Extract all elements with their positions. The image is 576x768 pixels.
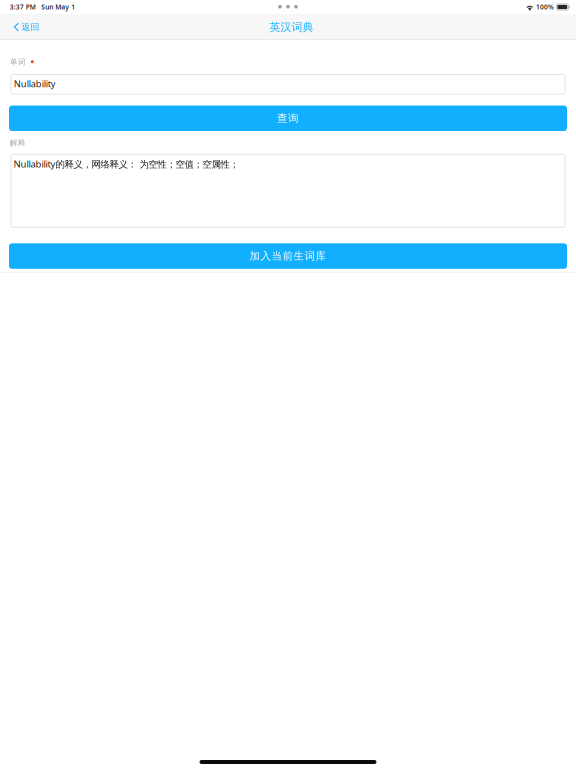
staticText: 解释 — [10, 138, 26, 148]
staticText: 单词 — [10, 57, 26, 67]
staticText: 查询 — [277, 112, 299, 125]
staticText: 英汉词典 — [269, 20, 313, 34]
button[interactable]: 返回 — [0, 16, 45, 38]
staticText: 返回 — [21, 21, 39, 33]
staticText: 加入当前生词库 — [249, 249, 326, 263]
staticText: 100% — [536, 2, 554, 12]
staticText: Nullability — [14, 77, 56, 90]
staticText: Sun May 1 — [41, 2, 75, 12]
button[interactable]: 查询 — [9, 105, 567, 131]
staticText: 3:37 PM — [10, 2, 36, 12]
staticText: Nullability的释义，网络释义： 为空性；空值；空属性； — [14, 157, 239, 170]
button[interactable]: 加入当前生词库 — [9, 243, 567, 269]
